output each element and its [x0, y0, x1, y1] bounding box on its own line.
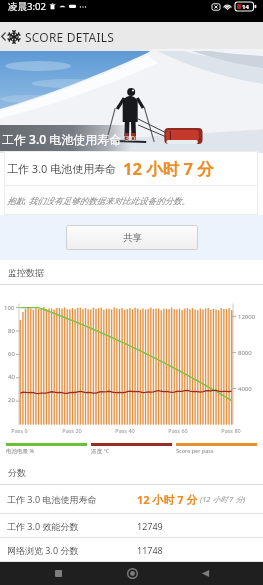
staticText: 80: [8, 327, 15, 335]
staticText: Pass 40: [115, 427, 135, 434]
staticText: 4000: [238, 385, 252, 393]
staticText: Pass 80: [221, 427, 241, 434]
staticText: 12 小时 7 分: [123, 157, 214, 180]
button[interactable]: Back: [0, 22, 7, 51]
staticText: SCORE DETAILS: [25, 29, 115, 45]
staticText: 凌晨3:02: [8, 0, 46, 13]
staticText: 12749: [137, 520, 163, 532]
staticText: 40: [8, 373, 15, 381]
staticText: Pass 0: [11, 427, 28, 434]
staticText: 100: [4, 304, 15, 312]
staticText: 60: [8, 350, 15, 358]
staticText: 工作 3.0 电池使用寿命: [2, 131, 122, 147]
staticText: Pass 60: [168, 427, 188, 434]
staticText: 14: [242, 3, 249, 11]
staticText: 监控数据: [8, 267, 44, 278]
button[interactable]: 共享: [66, 225, 198, 250]
staticText: 工作 3.0 电池使用寿命: [7, 161, 117, 176]
staticText: 分数: [8, 467, 26, 478]
staticText: Score per pass: [176, 447, 214, 454]
button[interactable]: Home: [117, 562, 147, 585]
staticText: 共享: [123, 232, 142, 244]
button[interactable]: 工作 3.0 电池使用寿命: [0, 485, 263, 513]
button[interactable]: 网络浏览 3.0 分数: [0, 538, 263, 561]
staticText: 3.0: [125, 134, 135, 144]
staticText: (12 小时 7 分): [200, 494, 246, 504]
staticText: 20: [8, 396, 15, 404]
staticText: 电池电量 %: [6, 447, 35, 455]
staticText: 网络浏览 3.0 分数: [7, 544, 79, 556]
staticText: 工作 3.0 效能分数: [7, 520, 79, 532]
staticText: 工作 3.0 电池使用寿命: [7, 493, 97, 505]
staticText: 12 小时 7 分: [137, 492, 198, 507]
staticText: Pass 20: [62, 427, 82, 434]
staticText: 抱歉, 我们没有足够的数据来对比此设备的分数。: [7, 195, 190, 207]
staticText: 12000: [238, 313, 256, 321]
button[interactable]: 工作 3.0 效能分数: [0, 514, 263, 537]
staticText: 温度 °C: [91, 447, 110, 455]
button[interactable]: Recent apps: [43, 562, 73, 585]
button[interactable]: Back: [190, 562, 220, 585]
staticText: 8000: [238, 349, 252, 357]
staticText: 11748: [137, 544, 163, 556]
